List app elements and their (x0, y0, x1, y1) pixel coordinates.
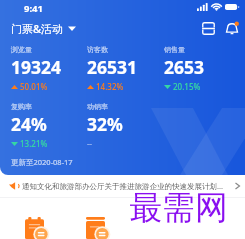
staticText: 通知文化和旅游部办公厅关于推进旅游企业的快速发展计划... (22, 181, 233, 191)
staticText: 20.15% (173, 81, 201, 92)
staticText: 13.21% (20, 138, 48, 149)
button[interactable]: 通知文化和旅游部办公厅关于推进旅游企业的快速发展计划... (0, 175, 245, 197)
staticText: 门票&活动 (11, 21, 64, 36)
button[interactable]: 门票&活动 (11, 21, 76, 36)
button[interactable]: Quick action (65, 217, 125, 239)
staticText: 复购率 (11, 102, 32, 111)
button[interactable]: 复购率 (11, 102, 87, 149)
staticText: 浏览量 (11, 45, 32, 54)
staticText: 50.01% (20, 81, 48, 92)
staticText: 24% (11, 112, 47, 136)
staticText: 最需网 (129, 187, 228, 229)
button[interactable]: 销售量 (164, 45, 241, 92)
staticText: 访客数 (87, 45, 108, 54)
button[interactable]: Quick action (4, 217, 65, 239)
staticText: 26531 (87, 55, 138, 79)
staticText: -- (87, 138, 93, 149)
staticText: 9:41 (24, 2, 43, 15)
staticText: 销售量 (164, 45, 185, 54)
staticText: 2653 (164, 55, 205, 79)
staticText: 14.32% (96, 81, 124, 92)
button[interactable]: 动销率 (87, 102, 164, 149)
staticText: 19324 (11, 55, 62, 79)
button[interactable]: 浏览量 (11, 45, 87, 92)
button[interactable]: Notifications (223, 19, 241, 37)
button[interactable]: Compare (199, 19, 217, 37)
staticText: 动销率 (87, 102, 108, 111)
staticText: 更新至2020-08-17 (11, 157, 73, 167)
staticText: 32% (87, 112, 123, 136)
button[interactable]: 访客数 (87, 45, 164, 92)
